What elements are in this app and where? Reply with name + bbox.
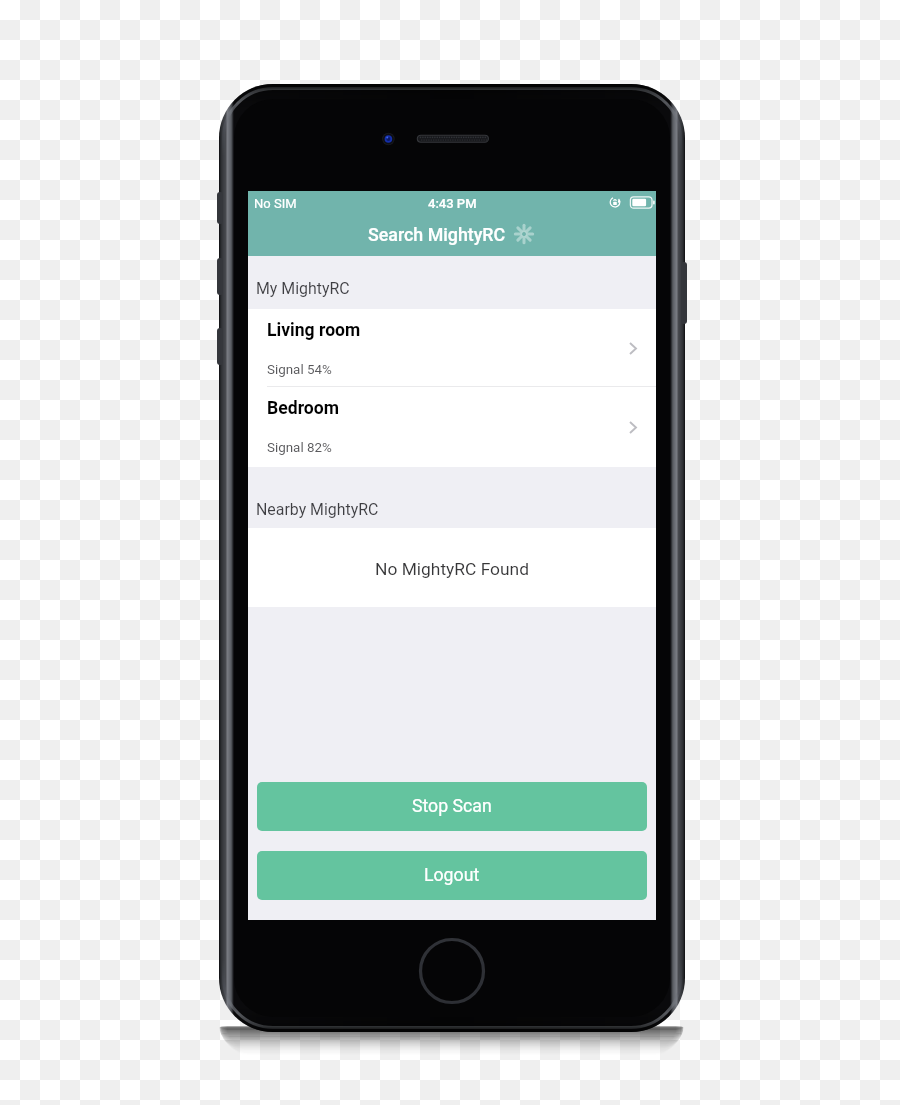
staticText: No SIM	[254, 196, 297, 211]
button[interactable]: Bedroom	[248, 387, 656, 467]
staticText: Search MightyRC	[368, 224, 506, 245]
button[interactable]: Stop Scan	[257, 782, 647, 831]
staticText: My MightyRC	[256, 279, 350, 298]
button[interactable]: Living room	[248, 309, 656, 387]
staticText: Stop Scan	[412, 796, 492, 817]
staticText: Signal 54%	[267, 362, 332, 378]
other: Open Bedroom	[629, 421, 637, 434]
other: Scanning	[511, 221, 537, 247]
button[interactable]: Logout	[257, 851, 647, 900]
other: Status icons	[608, 197, 650, 211]
staticText: Bedroom	[267, 398, 339, 419]
staticText: Nearby MightyRC	[256, 500, 379, 519]
staticText: No MightyRC Found	[375, 559, 530, 579]
staticText: 4:43 PM	[428, 196, 477, 211]
staticText: Living room	[267, 320, 361, 341]
other: Open Living room	[629, 342, 637, 355]
staticText: Signal 82%	[267, 440, 332, 456]
staticText: Logout	[424, 865, 480, 886]
